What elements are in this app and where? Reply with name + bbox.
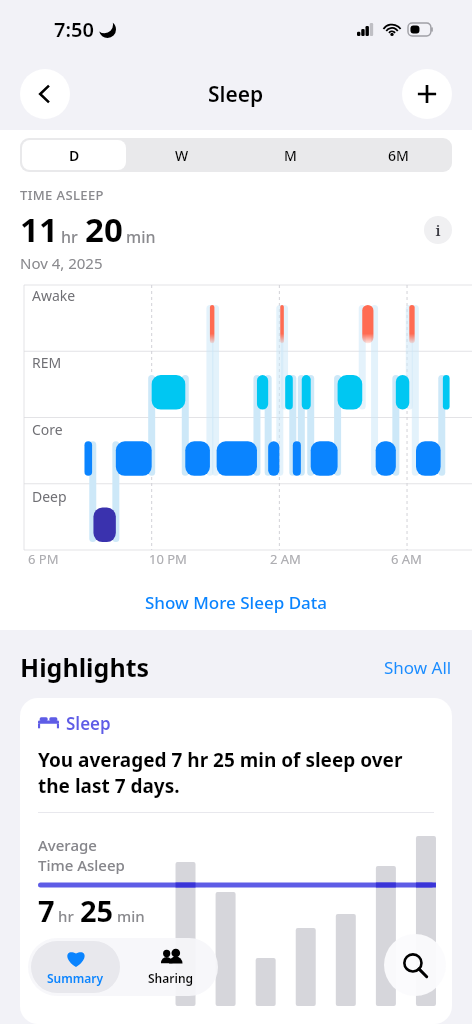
- button[interactable]: Sharing: [123, 938, 218, 996]
- button[interactable]: W: [130, 140, 234, 170]
- staticText: hr: [58, 906, 74, 926]
- button[interactable]: 6M: [346, 140, 450, 170]
- staticText: 10 PM: [149, 550, 187, 568]
- button[interactable]: Show More Sleep Data: [0, 584, 472, 620]
- staticText: min: [126, 226, 156, 248]
- button[interactable]: D: [22, 140, 126, 170]
- staticText: 6 AM: [391, 550, 422, 568]
- staticText: REM: [32, 353, 62, 372]
- staticText: hr: [61, 226, 78, 248]
- staticText: TIME ASLEEP: [20, 186, 104, 204]
- staticText: min: [117, 906, 145, 926]
- staticText: Summary: [47, 970, 104, 986]
- staticText: Time Asleep: [38, 855, 125, 875]
- staticText: D: [69, 146, 80, 165]
- staticText: Show All: [384, 656, 452, 679]
- staticText: Deep: [32, 487, 67, 506]
- staticText: 20: [85, 207, 123, 252]
- staticText: Sleep: [208, 80, 264, 109]
- staticText: 7: [38, 891, 55, 930]
- staticText: 2 AM: [270, 550, 301, 568]
- staticText: 7:50: [54, 16, 94, 43]
- staticText: 11: [20, 207, 58, 252]
- button[interactable]: M: [238, 140, 342, 170]
- staticText: W: [175, 146, 189, 165]
- button[interactable]: Sleep: [20, 698, 452, 1024]
- button[interactable]: Add: [402, 69, 452, 119]
- staticText: Awake: [32, 286, 76, 305]
- staticText: Sleep: [66, 712, 111, 735]
- button[interactable]: Summary: [31, 941, 120, 993]
- staticText: Nov 4, 2025: [20, 253, 103, 273]
- staticText: Highlights: [20, 650, 150, 684]
- staticText: M: [284, 146, 297, 165]
- button[interactable]: Info: [424, 216, 452, 244]
- staticText: 25: [80, 891, 114, 930]
- button[interactable]: Back: [20, 69, 70, 119]
- staticText: 6M: [388, 146, 409, 165]
- staticText: Sharing: [148, 970, 194, 986]
- staticText: Average: [38, 835, 97, 855]
- staticText: Show More Sleep Data: [145, 591, 328, 614]
- staticText: i: [435, 220, 441, 240]
- button[interactable]: Show All: [384, 656, 452, 679]
- staticText: 6 PM: [28, 550, 59, 568]
- staticText: Core: [32, 420, 63, 439]
- button[interactable]: Search: [384, 934, 446, 996]
- staticText: You averaged 7 hr 25 min of sleep over t…: [38, 747, 434, 798]
